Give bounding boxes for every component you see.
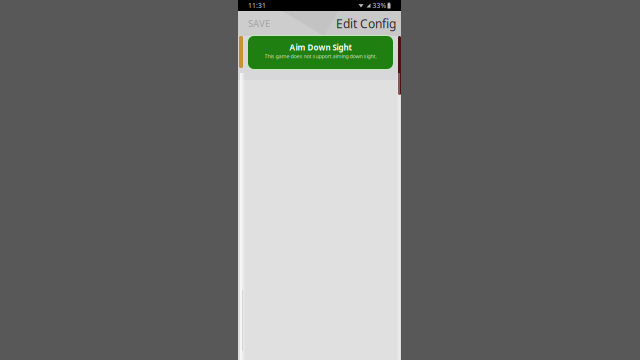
button[interactable]: Aim Down Sight — [248, 36, 393, 69]
staticText: 33% — [372, 1, 386, 10]
staticText: Edit Config — [336, 15, 396, 31]
button[interactable]: SAVE — [238, 11, 280, 36]
staticText: 11:31 — [248, 1, 266, 10]
staticText: SAVE — [248, 17, 270, 30]
staticText: Aim Down Sight — [289, 42, 351, 53]
staticText: This game does not support aiming down s… — [264, 53, 376, 60]
